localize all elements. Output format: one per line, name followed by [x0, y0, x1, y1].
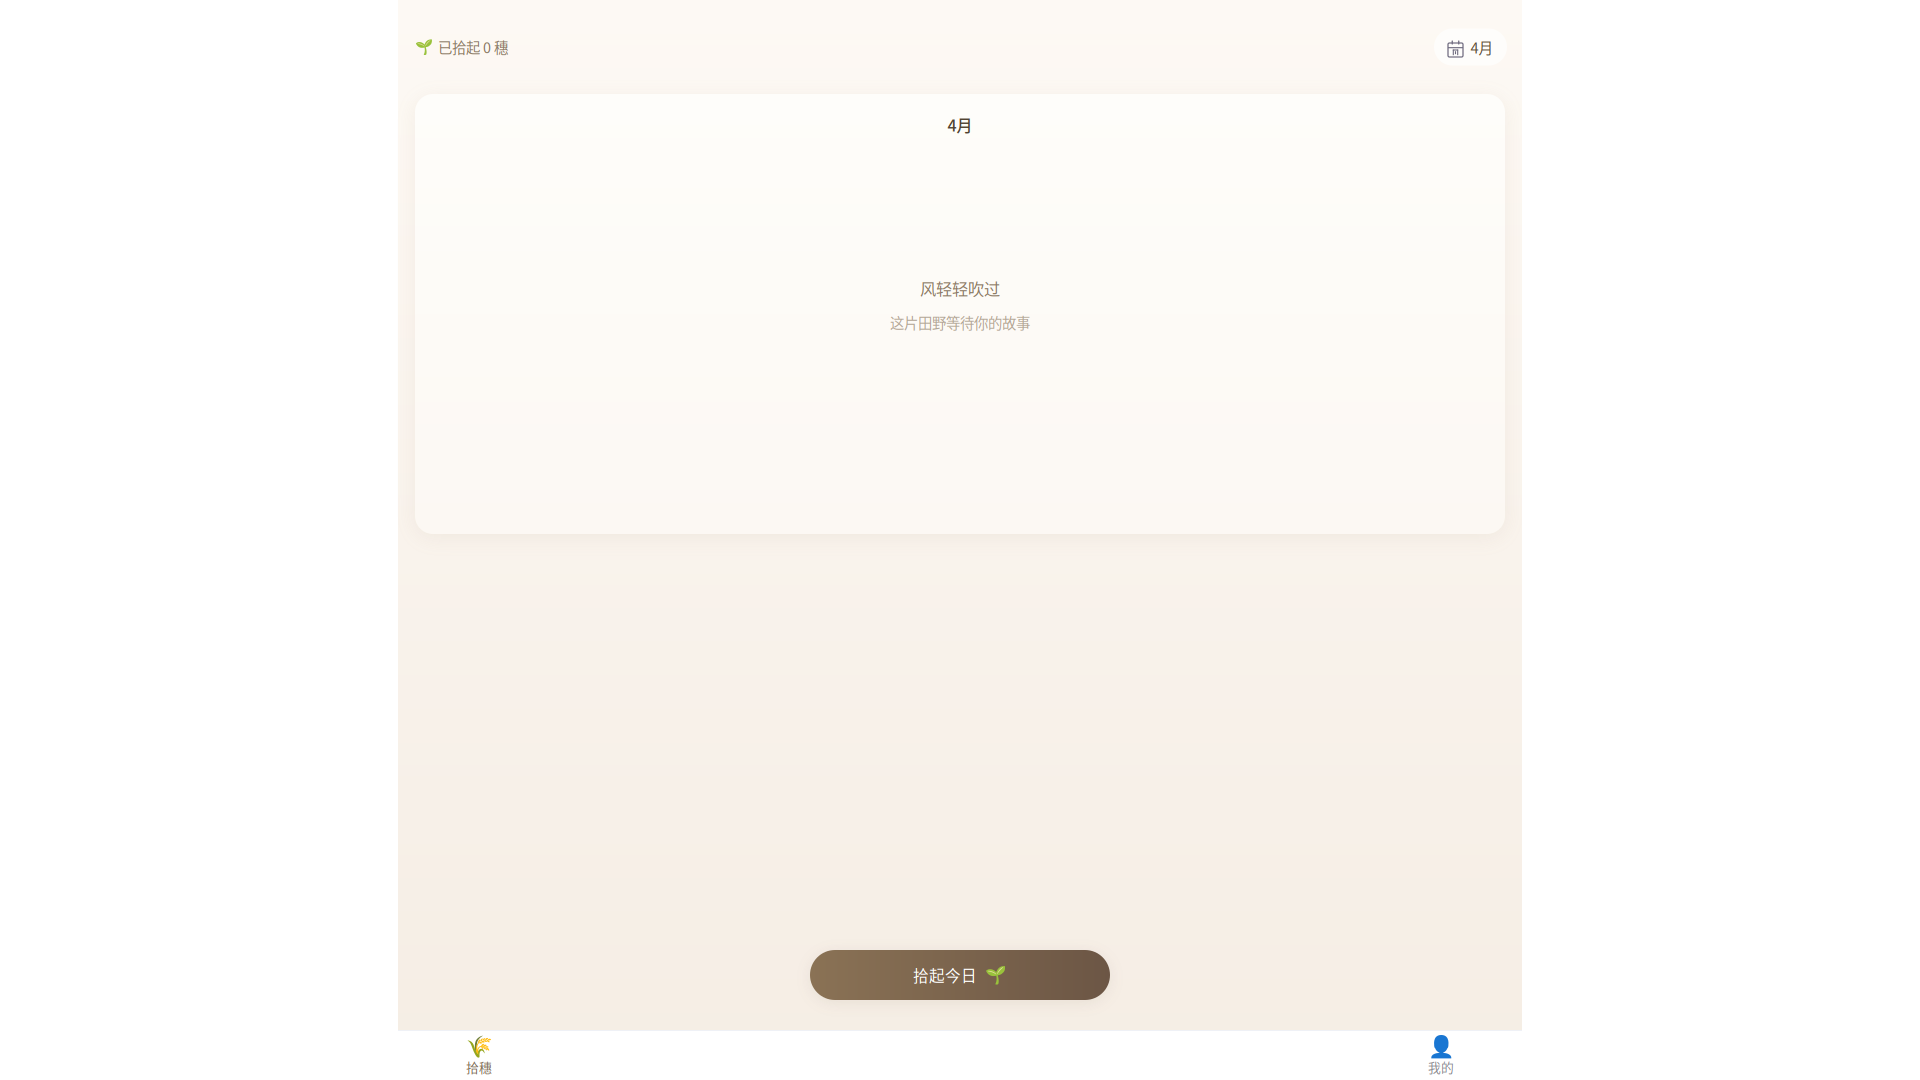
staticText: 4月: [947, 113, 972, 136]
staticText: 这片田野等待你的故事: [890, 312, 1030, 333]
staticText: 🌱: [985, 965, 1007, 985]
staticText: 我的: [1428, 1058, 1454, 1076]
button[interactable]: 👤: [1407, 1031, 1475, 1080]
staticText: 4月: [1470, 36, 1493, 58]
staticText: 🌱: [415, 38, 433, 56]
button[interactable]: 选择月份 4月: [1434, 28, 1507, 65]
button[interactable]: 🌾: [445, 1031, 513, 1080]
staticText: 🌾: [465, 1034, 492, 1059]
staticText: 已拾起 0 穗: [438, 37, 508, 57]
staticText: 拾穗: [466, 1058, 492, 1076]
staticText: 👤: [1427, 1034, 1454, 1059]
staticText: 风轻轻吹过: [920, 276, 1000, 300]
staticText: 拾起今日: [913, 964, 977, 986]
button[interactable]: 拾起今日: [810, 950, 1110, 1000]
